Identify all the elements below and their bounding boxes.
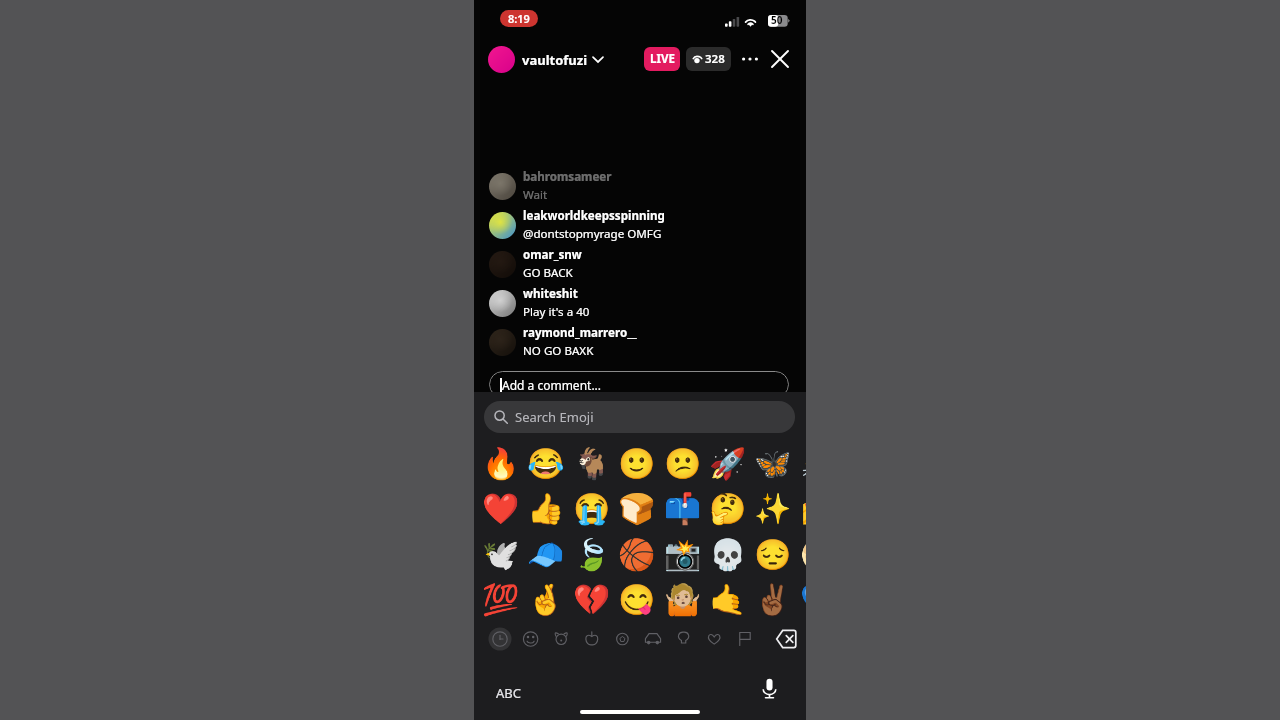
staticText: Wait bbox=[523, 187, 548, 203]
staticText: whiteshit bbox=[523, 286, 578, 302]
staticText: Play it's a 40 bbox=[523, 304, 590, 320]
staticText: Add a comment... bbox=[502, 377, 602, 393]
staticText: GO BACK bbox=[523, 265, 573, 281]
staticText: raymond_marrero__ bbox=[523, 325, 637, 341]
staticText: omar_snw bbox=[523, 247, 582, 263]
staticText: 8:19 bbox=[508, 11, 530, 26]
button[interactable]: Close bbox=[767, 46, 793, 72]
button[interactable]: LIVE bbox=[644, 47, 680, 71]
button[interactable]: whiteshit bbox=[489, 284, 789, 322]
staticText: bahromsameer bbox=[523, 169, 612, 185]
staticText: 328 bbox=[705, 51, 725, 67]
button[interactable]: 328 bbox=[686, 47, 731, 71]
button[interactable]: raymond_marrero__ bbox=[489, 323, 789, 361]
button[interactable]: Voice input bbox=[756, 675, 782, 701]
button[interactable]: vaultofuzi bbox=[522, 48, 603, 71]
button[interactable]: bahromsameer bbox=[489, 167, 789, 205]
staticText: vaultofuzi bbox=[522, 51, 588, 69]
staticText: Search Emoji bbox=[515, 408, 594, 426]
button[interactable]: Profile picture bbox=[488, 46, 515, 73]
button[interactable]: omar_snw bbox=[489, 245, 789, 283]
staticText: LIVE bbox=[650, 51, 675, 67]
button[interactable]: ABC bbox=[490, 678, 527, 708]
button[interactable]: Search Emoji bbox=[484, 401, 795, 433]
button[interactable]: leakworldkeepsspinning bbox=[489, 206, 789, 244]
staticText: @dontstopmyrage OMFG bbox=[523, 226, 662, 242]
button[interactable]: More options bbox=[738, 47, 762, 71]
staticText: ABC bbox=[496, 684, 521, 702]
staticText: leakworldkeepsspinning bbox=[523, 208, 665, 224]
button[interactable]: Add a comment... bbox=[489, 371, 789, 398]
staticText: 50 bbox=[771, 13, 783, 27]
staticText: NO GO BAXK bbox=[523, 343, 594, 359]
